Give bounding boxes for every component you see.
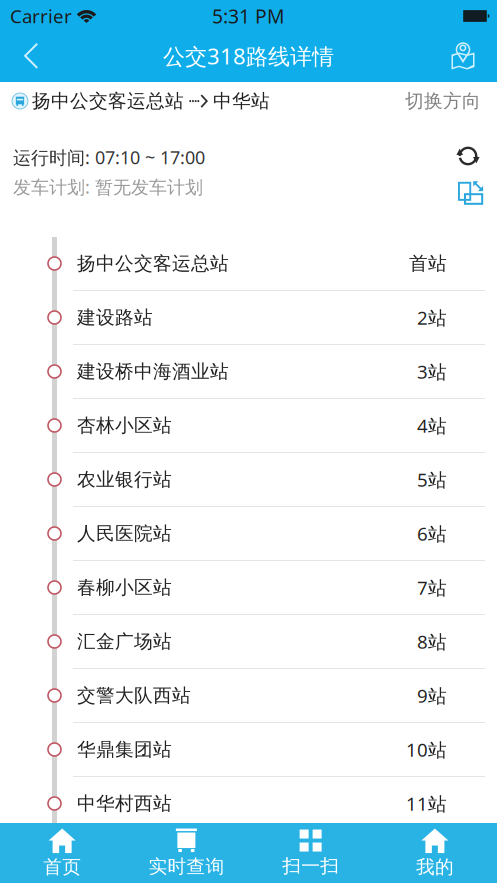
button[interactable]: 建设路站 bbox=[0, 291, 497, 345]
staticText: 运行时间: 07:10 ~ 17:00 bbox=[13, 145, 205, 169]
button[interactable]: Back bbox=[8, 31, 54, 81]
staticText: 2站 bbox=[417, 305, 447, 330]
staticText: 10站 bbox=[406, 737, 447, 762]
button[interactable]: 杏林小区站 bbox=[0, 399, 497, 453]
staticText: 7站 bbox=[417, 575, 447, 600]
staticText: 中华村西站 bbox=[77, 792, 172, 815]
staticText: 交警大队西站 bbox=[77, 684, 191, 707]
button[interactable]: 汇金广场站 bbox=[0, 615, 497, 669]
staticText: 4站 bbox=[417, 413, 447, 438]
staticText: 扫一扫 bbox=[282, 854, 339, 877]
staticText: 9站 bbox=[417, 683, 447, 708]
button[interactable]: Map bbox=[437, 31, 489, 81]
staticText: 6站 bbox=[417, 521, 447, 546]
button[interactable]: 交警大队西站 bbox=[0, 669, 497, 723]
staticText: 扬中公交客运总站 bbox=[77, 252, 229, 275]
staticText: Carrier bbox=[10, 3, 72, 29]
staticText: 建设桥中海酒业站 bbox=[77, 360, 229, 383]
button[interactable]: 人民医院站 bbox=[0, 507, 497, 561]
button[interactable]: 我的 bbox=[373, 823, 497, 883]
staticText: 中华站 bbox=[213, 89, 270, 113]
staticText: 农业银行站 bbox=[77, 468, 172, 491]
staticText: 8站 bbox=[417, 629, 447, 654]
button[interactable]: Copy route bbox=[455, 177, 481, 205]
staticText: 公交318路线详情 bbox=[163, 41, 334, 71]
staticText: 11站 bbox=[406, 791, 447, 816]
staticText: 华鼎集团站 bbox=[77, 738, 172, 761]
button[interactable]: 农业银行站 bbox=[0, 453, 497, 507]
staticText: 扬中公交客运总站 bbox=[32, 89, 184, 113]
staticText: 建设路站 bbox=[77, 306, 153, 329]
staticText: 5站 bbox=[417, 467, 447, 492]
button[interactable]: 建设桥中海酒业站 bbox=[0, 345, 497, 399]
staticText: 切换方向 bbox=[405, 89, 481, 113]
staticText: 首页 bbox=[43, 855, 81, 878]
button[interactable]: 切换方向 bbox=[405, 89, 481, 113]
button[interactable]: 扫一扫 bbox=[248, 823, 373, 883]
button[interactable]: 扬中公交客运总站 bbox=[0, 237, 497, 291]
button[interactable]: 首页 bbox=[0, 823, 124, 883]
button[interactable]: 华鼎集团站 bbox=[0, 723, 497, 777]
staticText: 实时查询 bbox=[148, 855, 224, 878]
button[interactable]: 实时查询 bbox=[124, 823, 248, 883]
staticText: 春柳小区站 bbox=[77, 576, 172, 599]
staticText: 5:31 PM bbox=[212, 3, 285, 29]
staticText: 杏林小区站 bbox=[77, 414, 172, 437]
button[interactable]: 中华村西站 bbox=[0, 777, 497, 831]
button[interactable]: 春柳小区站 bbox=[0, 561, 497, 615]
button[interactable]: Refresh bbox=[456, 145, 480, 167]
staticText: 人民医院站 bbox=[77, 522, 172, 545]
staticText: 发车计划: 暂无发车计划 bbox=[13, 174, 203, 199]
staticText: 我的 bbox=[416, 855, 454, 878]
staticText: 3站 bbox=[417, 359, 447, 384]
staticText: 首站 bbox=[409, 252, 447, 275]
staticText: 汇金广场站 bbox=[77, 630, 172, 653]
